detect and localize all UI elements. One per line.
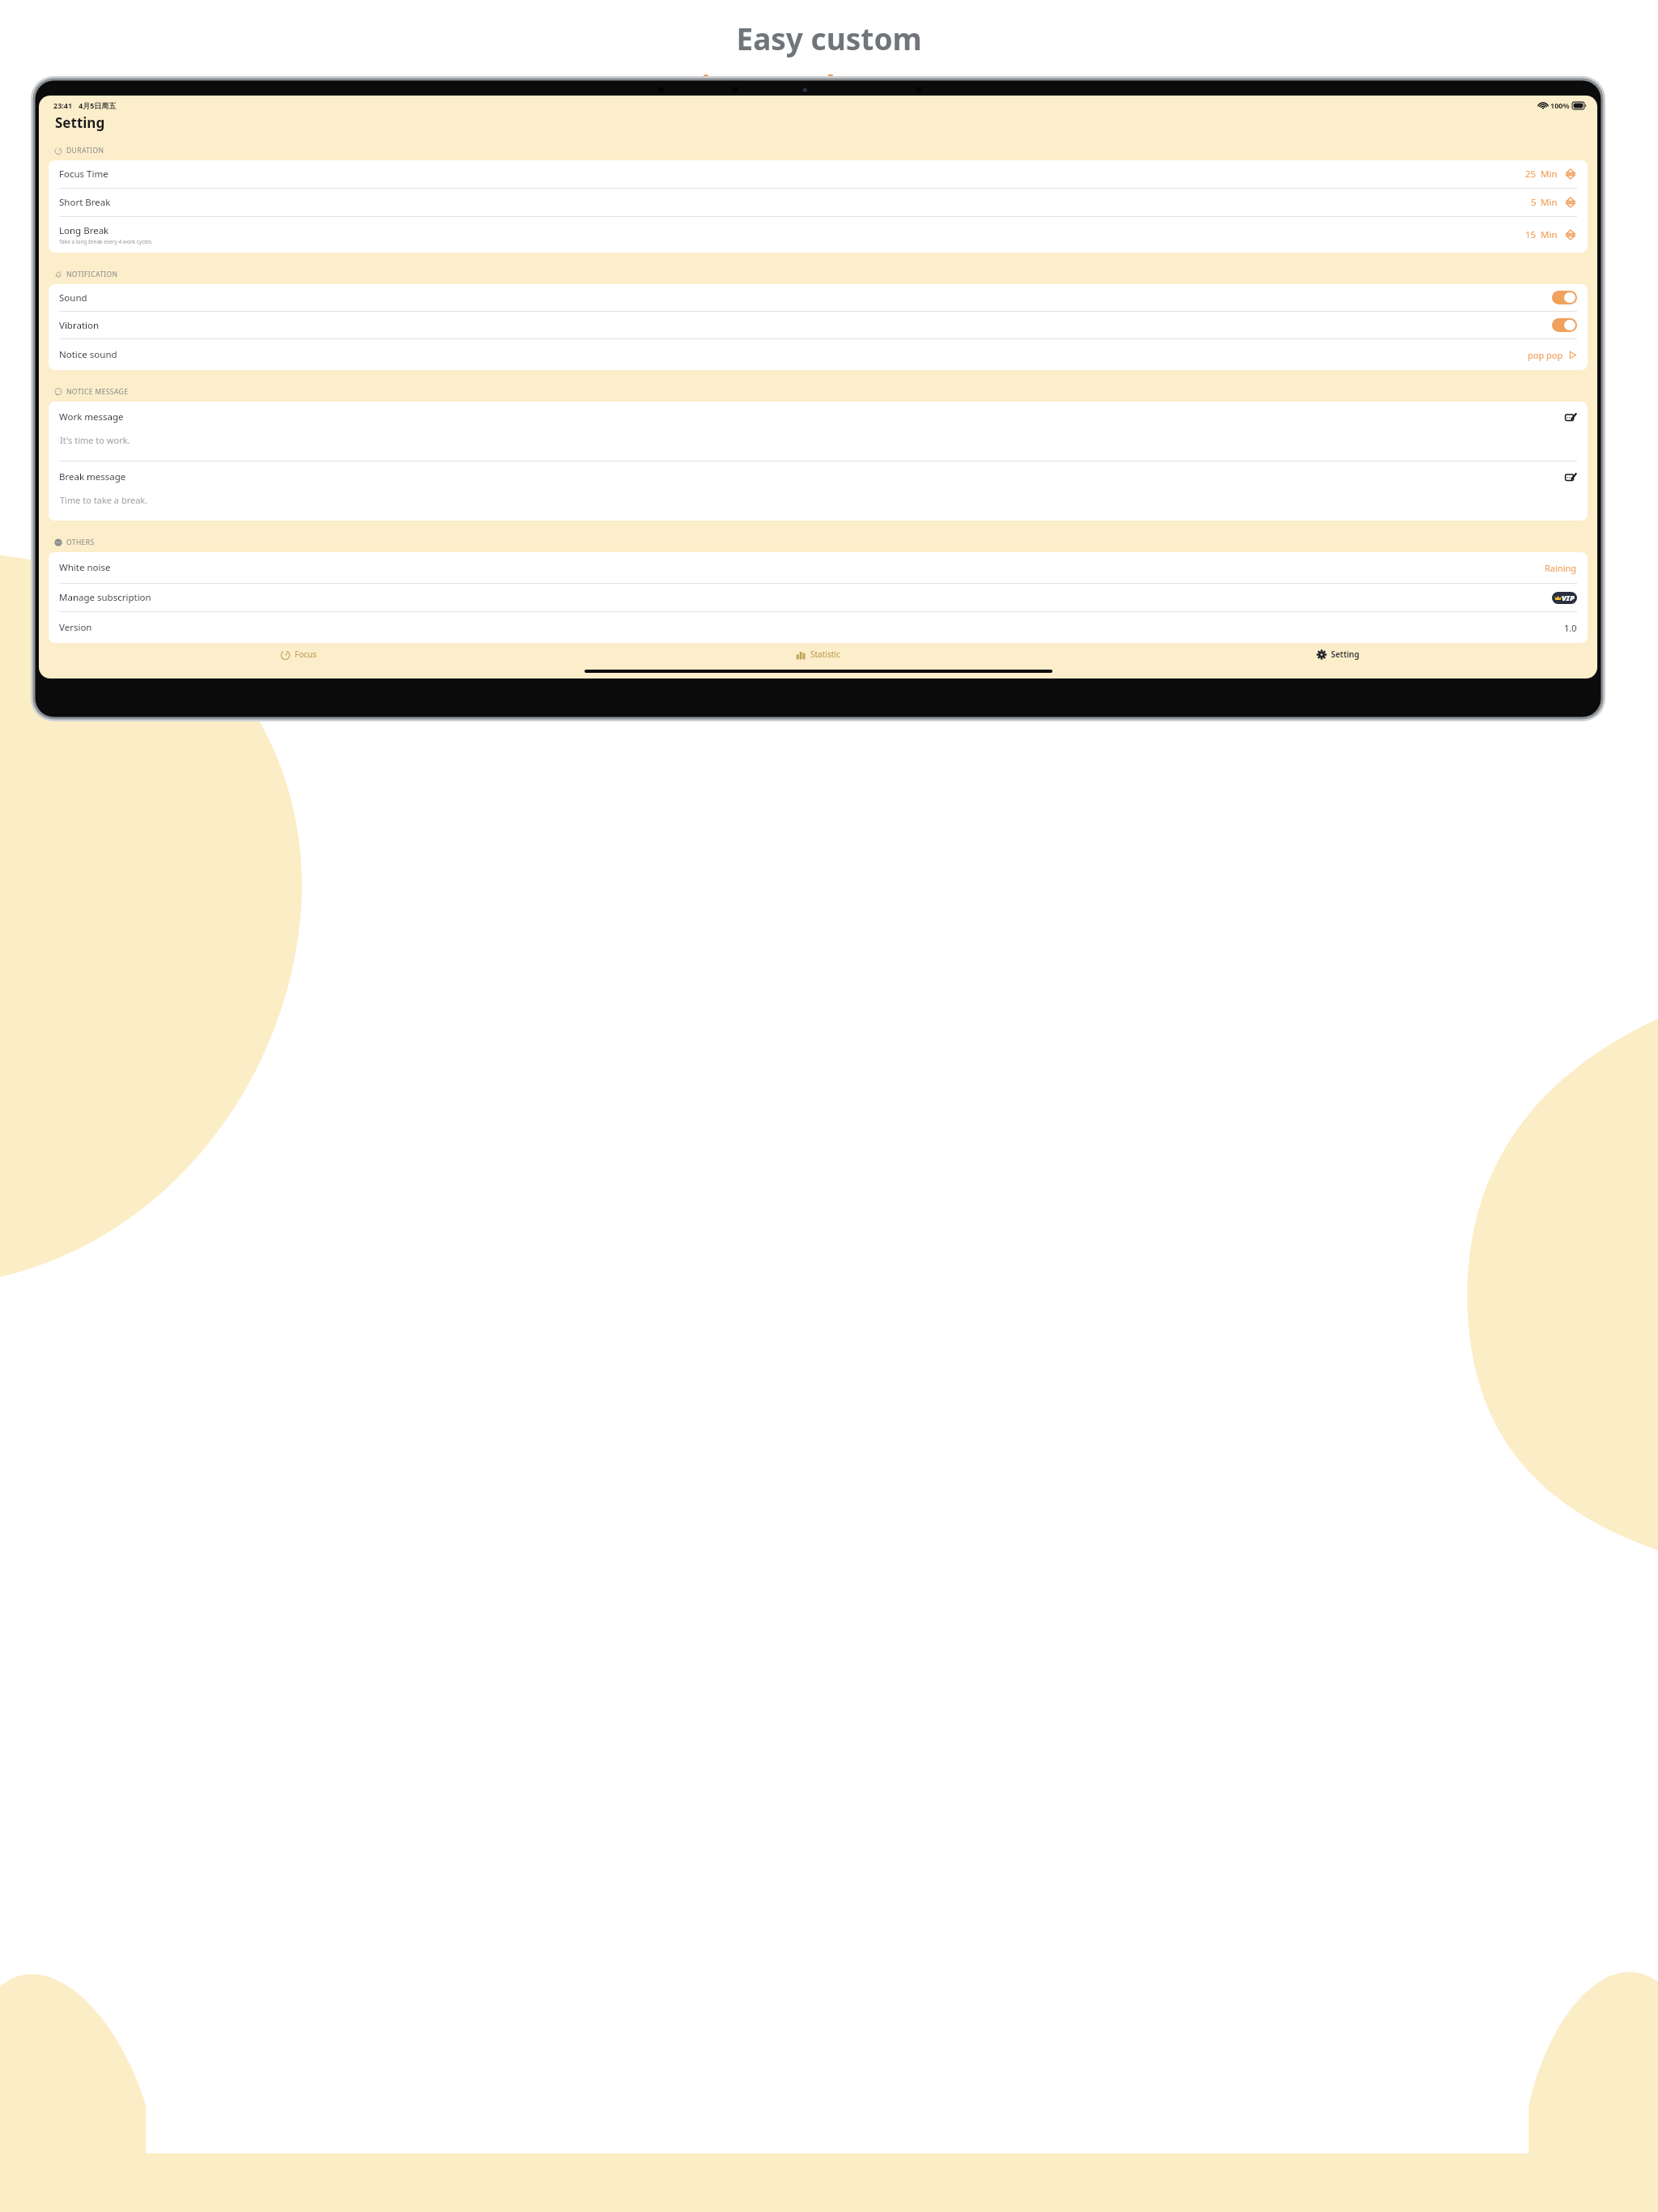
- staticText: Sound: [59, 291, 1552, 304]
- staticText: 15: [1525, 228, 1537, 241]
- button[interactable]: Adjust Focus Time: [1564, 168, 1577, 181]
- staticText: pop pop: [1528, 349, 1563, 361]
- staticText: VIP: [1562, 593, 1575, 603]
- button[interactable]: Focus: [39, 644, 558, 665]
- staticText: Break message: [59, 470, 1565, 483]
- button[interactable]: Short Break: [49, 189, 1588, 216]
- other: Edit Work message: [1565, 411, 1577, 423]
- button[interactable]: Vibration: [49, 312, 1588, 338]
- button[interactable]: Sound: [49, 284, 1588, 311]
- staticText: 4月5日周五: [79, 100, 117, 110]
- other: Vibration toggle: [1552, 318, 1577, 332]
- button[interactable]: Work message: [49, 402, 1588, 461]
- staticText: Setting: [55, 113, 105, 132]
- staticText: 100%: [1550, 100, 1570, 110]
- staticText: Focus Time: [59, 168, 108, 181]
- button[interactable]: Focus Time: [49, 160, 1588, 188]
- staticText: It's time to work.: [60, 434, 130, 446]
- staticText: 5: [1531, 196, 1537, 209]
- staticText: Manage subscription: [59, 591, 1552, 604]
- other: Sound toggle: [1552, 291, 1577, 304]
- button[interactable]: Adjust Long Break: [1564, 228, 1577, 241]
- staticText: 1.0: [1564, 622, 1577, 634]
- button[interactable]: Version: [49, 612, 1588, 643]
- staticText: Long Break: [59, 224, 109, 237]
- staticText: Statistic: [810, 649, 840, 660]
- staticText: OTHERS: [66, 538, 95, 547]
- staticText: Notice sound: [59, 348, 1528, 361]
- staticText: NOTIFICATION: [66, 270, 118, 279]
- staticText: Focus: [295, 649, 317, 660]
- staticText: Work message: [59, 410, 1565, 423]
- staticText: White noise: [59, 561, 1545, 574]
- button[interactable]: Break message: [49, 462, 1588, 521]
- staticText: Min: [1541, 228, 1558, 241]
- staticText: Raining: [1545, 562, 1577, 574]
- staticText: Time to take a break.: [60, 494, 148, 506]
- button[interactable]: Adjust Short Break: [1564, 196, 1577, 209]
- button[interactable]: Setting: [1078, 644, 1597, 665]
- staticText: Easy custom: [736, 18, 922, 58]
- staticText: NOTICE MESSAGE: [66, 387, 129, 397]
- button[interactable]: Notice sound: [49, 339, 1588, 370]
- staticText: Version: [59, 621, 1564, 634]
- button[interactable]: Statistic: [558, 644, 1078, 665]
- button[interactable]: Manage subscription: [49, 584, 1588, 611]
- staticText: Short Break: [59, 196, 111, 209]
- button[interactable]: Long Break: [49, 217, 1588, 253]
- staticText: Take a long break every 4 work cycles.: [59, 238, 153, 245]
- other: Edit Break message: [1565, 471, 1577, 483]
- staticText: Vibration: [59, 319, 1552, 332]
- staticText: Min: [1541, 168, 1558, 181]
- staticText: 23:41: [53, 100, 73, 110]
- staticText: DURATION: [66, 146, 104, 155]
- staticText: Setting: [1331, 649, 1359, 660]
- staticText: 25: [1525, 168, 1537, 181]
- staticText: Timer and message: [684, 66, 975, 106]
- staticText: Min: [1541, 196, 1558, 209]
- button[interactable]: White noise: [49, 552, 1588, 583]
